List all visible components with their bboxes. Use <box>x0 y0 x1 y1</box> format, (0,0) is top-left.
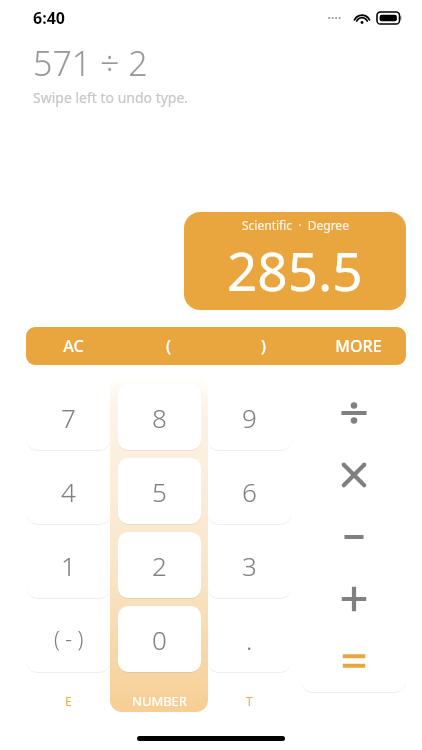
button[interactable]: Subtract <box>301 506 406 568</box>
button[interactable]: ) <box>216 327 311 365</box>
button[interactable]: 1 <box>27 532 110 598</box>
button[interactable]: 9 <box>208 384 291 450</box>
staticText: E <box>65 693 72 709</box>
staticText: 5 <box>152 474 167 509</box>
staticText: 8 <box>152 400 167 435</box>
staticText: 571 ÷ 2 <box>33 40 148 86</box>
staticText: 285.5 <box>227 234 363 306</box>
staticText: MORE <box>335 335 382 357</box>
button[interactable]: Divide <box>301 382 406 444</box>
button[interactable]: Add <box>301 568 406 630</box>
button[interactable]: 2 <box>118 532 201 598</box>
staticText: 2 <box>152 548 167 583</box>
staticText: 1 <box>61 548 76 583</box>
staticText: T <box>246 693 253 709</box>
button[interactable]: . <box>208 606 291 672</box>
staticText: . <box>246 622 253 657</box>
button[interactable]: 6 <box>208 458 291 524</box>
staticText: Scientific · Degree <box>242 217 349 233</box>
staticText: 0 <box>152 622 167 657</box>
staticText: ) <box>261 335 266 357</box>
button[interactable]: 5 <box>118 458 201 524</box>
button[interactable]: Multiply <box>301 444 406 506</box>
button[interactable]: ( <box>121 327 216 365</box>
staticText: Swipe left to undo type. <box>33 88 189 107</box>
button[interactable]: 0 <box>118 606 201 672</box>
button[interactable]: 7 <box>27 384 110 450</box>
button[interactable]: 3 <box>208 532 291 598</box>
staticText: ( <box>166 335 171 357</box>
button[interactable]: Scientific · Degree <box>184 212 406 310</box>
button[interactable]: 4 <box>27 458 110 524</box>
button[interactable]: ( - ) <box>27 606 110 672</box>
button[interactable]: AC <box>26 327 121 365</box>
staticText: 6:40 <box>33 7 65 29</box>
staticText: ( - ) <box>54 625 84 654</box>
button[interactable]: Equals <box>301 630 406 692</box>
staticText: AC <box>63 335 84 357</box>
staticText: 4 <box>61 474 76 509</box>
staticText: 7 <box>61 400 76 435</box>
staticText: 3 <box>242 548 257 583</box>
button[interactable]: 8 <box>118 384 201 450</box>
staticText: 9 <box>242 400 257 435</box>
staticText: 6 <box>242 474 257 509</box>
staticText: NUMBER <box>132 692 187 710</box>
button[interactable]: MORE <box>311 327 406 365</box>
